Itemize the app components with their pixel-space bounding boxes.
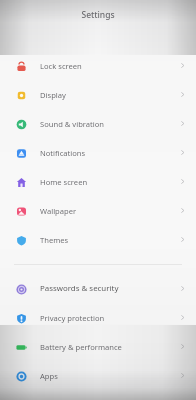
button[interactable]: Themes [0,225,196,254]
staticText: Settings [81,9,115,21]
staticText: Sound & vibration [40,119,105,129]
other: Open Wallpaper [178,206,187,215]
button[interactable]: Notifications [0,138,196,167]
staticText: Battery & performance [40,342,122,352]
staticText: Apps [40,371,58,381]
other: Open Sound & vibration [178,119,187,128]
other: Open Notifications [178,148,187,157]
staticText: Display [40,90,66,100]
staticText: Notifications [40,148,86,158]
other: Open Lock screen [178,61,187,70]
button[interactable]: Battery & performance [0,332,196,361]
other: Open Apps [178,371,187,380]
other: Open Home screen [178,177,187,186]
button[interactable]: Sound & vibration [0,109,196,138]
button[interactable]: Home screen [0,167,196,196]
other: Open Privacy protection [178,313,187,322]
other: Open Themes [178,235,187,244]
staticText: Wallpaper [40,206,77,216]
staticText: Themes [40,235,69,245]
button[interactable]: Wallpaper [0,196,196,225]
button[interactable]: Passwords & security [0,274,196,303]
other: Open Display [178,90,187,99]
staticText: Passwords & security [40,283,119,294]
button[interactable]: Display [0,80,196,109]
button[interactable]: Lock screen [0,51,196,80]
staticText: Lock screen [40,61,82,71]
other: Open Passwords & security [178,284,187,293]
staticText: Privacy protection [40,313,105,323]
button[interactable]: Privacy protection [0,303,196,332]
other: Open Battery & performance [178,342,187,351]
button[interactable]: Apps [0,361,196,390]
staticText: Home screen [40,177,88,187]
